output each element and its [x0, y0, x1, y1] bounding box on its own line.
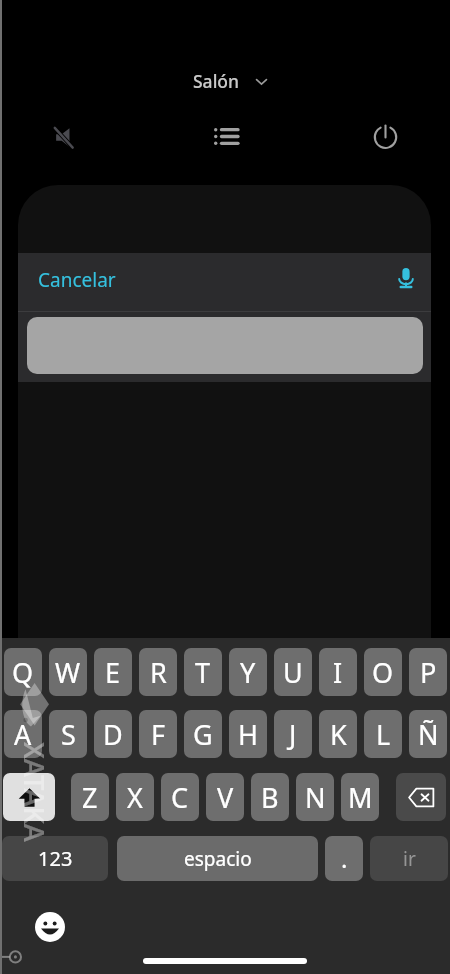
staticText: Ñ: [418, 716, 439, 753]
button[interactable]: J: [274, 710, 312, 758]
button[interactable]: L: [364, 710, 402, 758]
button[interactable]: N: [296, 773, 334, 821]
staticText: Salón: [193, 69, 240, 93]
staticText: I: [333, 654, 343, 691]
staticText: Y: [240, 654, 256, 691]
staticText: G: [193, 716, 213, 753]
staticText: Z: [82, 779, 98, 816]
button[interactable]: K: [319, 710, 357, 758]
button[interactable]: V: [206, 773, 244, 821]
button[interactable]: I: [319, 648, 357, 696]
button[interactable]: T: [184, 648, 222, 696]
staticText: B: [261, 779, 279, 816]
staticText: O: [372, 654, 394, 691]
button[interactable]: F: [139, 710, 177, 758]
button[interactable]: espacio: [117, 836, 318, 881]
button[interactable]: Salón: [193, 69, 268, 93]
button[interactable]: ir: [370, 836, 448, 881]
button[interactable]: M: [341, 773, 379, 821]
staticText: K: [330, 716, 347, 753]
staticText: V: [217, 779, 234, 816]
button[interactable]: E: [94, 648, 132, 696]
button[interactable]: 123: [2, 836, 108, 881]
button[interactable]: G: [184, 710, 222, 758]
button[interactable]: R: [139, 648, 177, 696]
staticText: Q: [12, 654, 34, 691]
staticText: X: [127, 779, 143, 816]
staticText: espacio: [184, 846, 252, 872]
button[interactable]: .: [325, 836, 363, 881]
staticText: E: [105, 654, 121, 691]
button[interactable]: W: [49, 648, 87, 696]
staticText: P: [420, 654, 437, 691]
button[interactable]: Q: [4, 648, 42, 696]
staticText: 123: [38, 845, 73, 872]
button[interactable]: Lista: [208, 118, 244, 154]
button[interactable]: Encender: [367, 119, 403, 155]
staticText: W: [55, 654, 81, 691]
staticText: M: [348, 779, 373, 816]
button[interactable]: Z: [71, 773, 109, 821]
staticText: F: [151, 716, 166, 753]
button[interactable]: P: [409, 648, 447, 696]
button[interactable]: Ñ: [409, 710, 447, 758]
staticText: R: [150, 654, 167, 691]
button[interactable]: Silenciar: [45, 119, 81, 155]
staticText: L: [376, 716, 391, 753]
button[interactable]: S: [49, 710, 87, 758]
staticText: T: [195, 654, 211, 691]
button[interactable]: D: [94, 710, 132, 758]
staticText: C: [171, 779, 189, 816]
button[interactable]: H: [229, 710, 267, 758]
button[interactable]: A: [4, 710, 42, 758]
staticText: H: [238, 716, 259, 753]
button[interactable]: Emoji: [35, 912, 65, 942]
button[interactable]: Y: [229, 648, 267, 696]
button[interactable]: C: [161, 773, 199, 821]
button[interactable]: O: [364, 648, 402, 696]
button[interactable]: Borrar: [396, 773, 446, 821]
staticText: ir: [403, 846, 416, 872]
button[interactable]: U: [274, 648, 312, 696]
staticText: Cancelar: [38, 267, 116, 293]
button[interactable]: Mayúsculas: [3, 773, 55, 821]
button[interactable]: X: [116, 773, 154, 821]
button[interactable]: Cancelar: [30, 258, 108, 302]
staticText: XATAKA BASICS: [13, 742, 53, 942]
button[interactable]: B: [251, 773, 289, 821]
button[interactable]: Micrófono: [388, 260, 424, 296]
staticText: J: [289, 716, 297, 753]
staticText: N: [305, 779, 326, 816]
staticText: .: [341, 842, 348, 875]
staticText: D: [103, 716, 123, 753]
staticText: A: [14, 716, 32, 753]
staticText: S: [61, 716, 76, 753]
staticText: U: [283, 654, 303, 691]
